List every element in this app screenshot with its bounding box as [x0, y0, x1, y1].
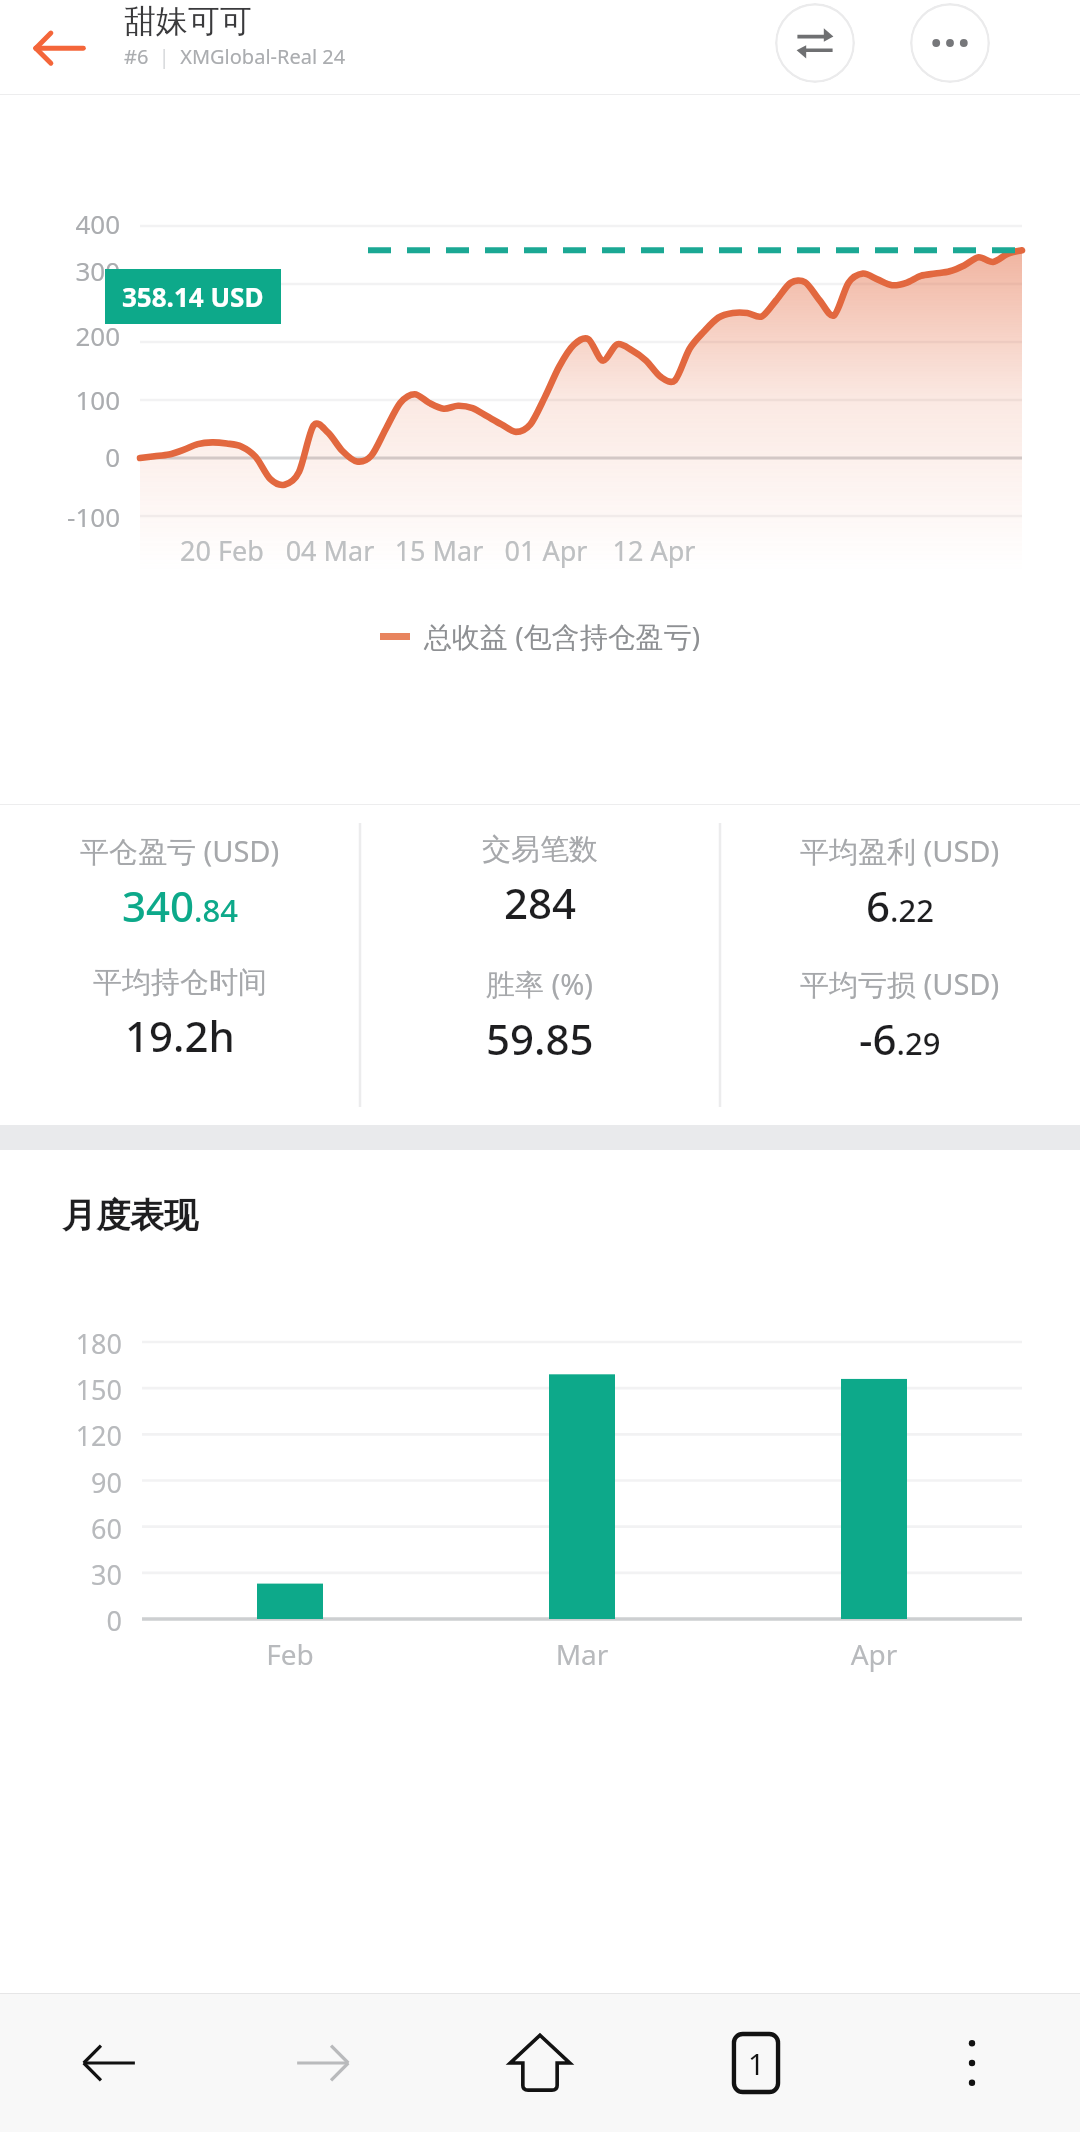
staticText: #6 | XMGlobal-Real 24 [124, 43, 346, 70]
staticText: 180 [0, 1325, 122, 1362]
staticText: 04 Mar [260, 532, 400, 569]
staticText: 120 [0, 1417, 122, 1454]
staticText: -6.29 [859, 1010, 941, 1067]
button[interactable]: Back [0, 1994, 216, 2132]
button[interactable]: More options [910, 3, 990, 83]
staticText: 1 [748, 2044, 765, 2083]
staticText: 交易笔数 [482, 831, 598, 868]
button[interactable]: Compare accounts [775, 3, 855, 83]
staticText: 01 Apr [476, 532, 616, 569]
staticText: 300 [0, 253, 120, 288]
staticText: 15 Mar [369, 532, 509, 569]
button[interactable]: Back [30, 18, 88, 76]
button[interactable]: Menu [864, 1994, 1080, 2132]
staticText: 60 [0, 1510, 122, 1547]
staticText: 200 [0, 318, 120, 353]
staticText: 150 [0, 1371, 122, 1408]
staticText: 甜妹可可 [124, 1, 252, 41]
button[interactable]: Tabs, 1 open [648, 1994, 864, 2132]
staticText: 0 [0, 439, 120, 474]
staticText: 358.14 USD [122, 279, 264, 314]
staticText: 平仓盈亏 (USD) [80, 831, 280, 871]
staticText: 400 [0, 206, 120, 241]
staticText: Apr [804, 1635, 944, 1673]
staticText: 340.84 [122, 877, 238, 934]
staticText: Feb [220, 1635, 360, 1673]
staticText: 平均盈利 (USD) [800, 831, 1000, 871]
staticText: 20 Feb [152, 532, 292, 569]
button[interactable]: Home [432, 1994, 648, 2132]
staticText: 12 Apr [584, 532, 724, 569]
staticText: -100 [0, 499, 120, 534]
button[interactable]: Forward [216, 1994, 432, 2132]
staticText: 100 [0, 382, 120, 417]
staticText: 月度表现 [62, 1194, 198, 1237]
staticText: Mar [512, 1635, 652, 1673]
staticText: 总收益 (包含持仓盈亏) [424, 617, 701, 655]
staticText: 6.22 [866, 877, 934, 934]
staticText: 0 [0, 1602, 122, 1639]
staticText: 30 [0, 1556, 122, 1593]
staticText: 90 [0, 1464, 122, 1501]
staticText: 平均持仓时间 [93, 964, 267, 1001]
staticText: 胜率 (%) [486, 964, 594, 1004]
staticText: 平均亏损 (USD) [800, 964, 1000, 1004]
staticText: 59.85 [486, 1010, 594, 1067]
staticText: 284 [504, 874, 577, 931]
staticText: 19.2h [125, 1007, 235, 1064]
